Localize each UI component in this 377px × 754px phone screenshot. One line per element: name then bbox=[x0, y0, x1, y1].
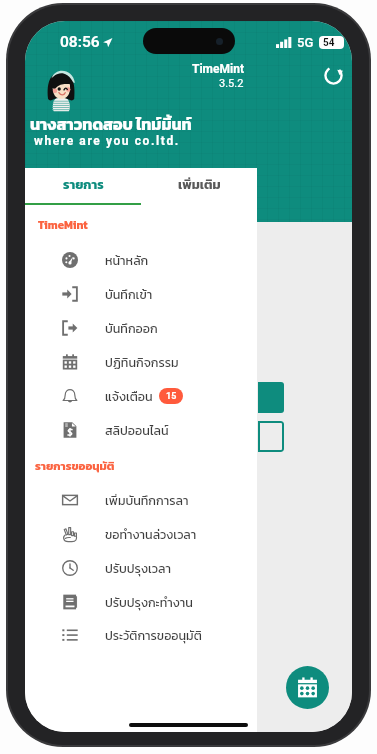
staticText: 54 bbox=[323, 37, 335, 49]
staticText: 08:56 bbox=[60, 33, 100, 51]
staticText: ขอทำงานล่วงเวลา bbox=[105, 525, 197, 544]
button[interactable]: ประวัติการขออนุมัติ bbox=[25, 618, 257, 652]
button[interactable]: ขอทำงานล่วงเวลา bbox=[25, 517, 257, 551]
staticText: ปรับปรุงเวลา bbox=[105, 559, 171, 578]
button[interactable]: Refresh bbox=[316, 58, 350, 92]
button[interactable]: แจ้งเตือน bbox=[25, 379, 257, 413]
button[interactable]: รายการ bbox=[25, 168, 141, 205]
staticText: where are you co.ltd. bbox=[34, 134, 180, 148]
staticText: หน้าหลัก bbox=[105, 251, 149, 270]
staticText: ปฏิทินกิจกรรม bbox=[105, 353, 179, 372]
staticText: เพิ่มเติม bbox=[178, 175, 221, 194]
staticText: นางสาวทดสอบ ไทม์มิ้นท์ bbox=[30, 112, 192, 136]
button[interactable]: บันทึกออก bbox=[25, 311, 257, 345]
staticText: 5G bbox=[297, 35, 314, 50]
staticText: 15 bbox=[166, 391, 177, 402]
staticText: 3.5.2 bbox=[219, 77, 244, 90]
button[interactable]: บันทึกเข้า bbox=[25, 277, 257, 311]
staticText: บันทึกเข้า bbox=[105, 285, 153, 304]
staticText: TimeMint bbox=[38, 216, 88, 233]
button[interactable]: สลิปออนไลน์ bbox=[25, 413, 257, 447]
staticText: TimeMint bbox=[192, 62, 244, 76]
staticText: แจ้งเตือน bbox=[105, 387, 153, 406]
button[interactable]: Calendar bbox=[286, 666, 329, 709]
staticText: รายการ bbox=[63, 175, 104, 194]
staticText: สลิปออนไลน์ bbox=[105, 421, 169, 440]
button[interactable]: เพิ่มบันทึกการลา bbox=[25, 483, 257, 517]
staticText: บันทึกออก bbox=[105, 319, 158, 338]
staticText: ประวัติการขออนุมัติ bbox=[105, 626, 202, 645]
staticText: เพิ่มบันทึกการลา bbox=[105, 491, 189, 510]
staticText: ปรับปรุงกะทำงาน bbox=[105, 593, 193, 612]
staticText: รายการขออนุมัติ bbox=[35, 457, 115, 474]
button[interactable]: หน้าหลัก bbox=[25, 243, 257, 277]
button[interactable]: ปรับปรุงเวลา bbox=[25, 551, 257, 585]
button[interactable]: ปรับปรุงกะทำงาน bbox=[25, 585, 257, 619]
button[interactable]: เพิ่มเติม bbox=[141, 168, 257, 205]
button[interactable]: ปฏิทินกิจกรรม bbox=[25, 345, 257, 379]
